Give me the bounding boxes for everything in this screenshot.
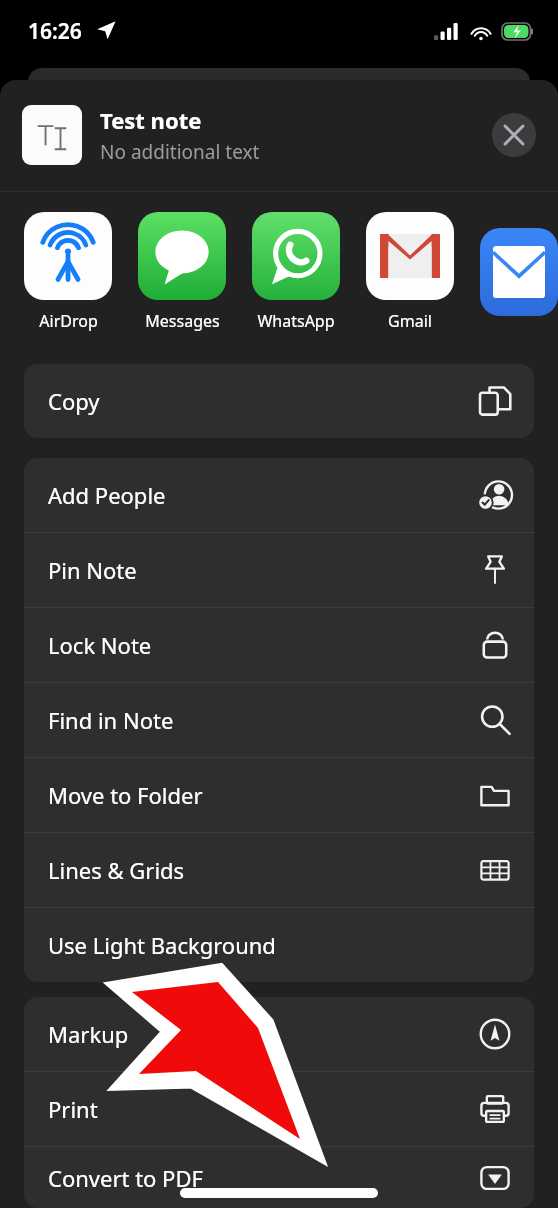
- button[interactable]: Mail: [480, 228, 558, 316]
- staticText: Move to Folder: [48, 780, 478, 810]
- staticText: Find in Note: [48, 705, 478, 735]
- button[interactable]: Pin Note: [24, 533, 534, 607]
- button[interactable]: Lines & Grids: [24, 833, 534, 907]
- staticText: Lock Note: [48, 630, 478, 660]
- button[interactable]: Lock Note: [24, 608, 534, 682]
- staticText: Add People: [48, 480, 478, 510]
- staticText: Markup: [48, 1019, 478, 1049]
- staticText: Gmail: [388, 310, 432, 332]
- button[interactable]: Add People: [24, 458, 534, 532]
- button[interactable]: AirDrop: [24, 212, 112, 332]
- button[interactable]: Find in Note: [24, 683, 534, 757]
- staticText: Messages: [145, 310, 220, 332]
- button[interactable]: Print: [24, 1072, 534, 1146]
- button[interactable]: Convert to PDF: [24, 1147, 534, 1208]
- button[interactable]: WhatsApp: [252, 212, 340, 332]
- button[interactable]: Messages: [138, 212, 226, 332]
- button[interactable]: Gmail: [366, 212, 454, 332]
- button[interactable]: Close: [492, 113, 536, 157]
- staticText: Lines & Grids: [48, 855, 478, 885]
- staticText: Use Light Background: [48, 930, 478, 960]
- staticText: Convert to PDF: [48, 1163, 478, 1193]
- staticText: 16:26: [28, 17, 82, 46]
- button[interactable]: Copy: [24, 364, 534, 438]
- staticText: AirDrop: [39, 310, 98, 332]
- staticText: Pin Note: [48, 555, 478, 585]
- staticText: Print: [48, 1094, 478, 1124]
- button[interactable]: Move to Folder: [24, 758, 534, 832]
- button[interactable]: Markup: [24, 997, 534, 1071]
- staticText: Copy: [48, 386, 478, 416]
- button[interactable]: Use Light Background: [24, 908, 534, 982]
- staticText: WhatsApp: [257, 310, 335, 332]
- staticText: No additional text: [100, 139, 260, 165]
- staticText: Test note: [100, 105, 202, 135]
